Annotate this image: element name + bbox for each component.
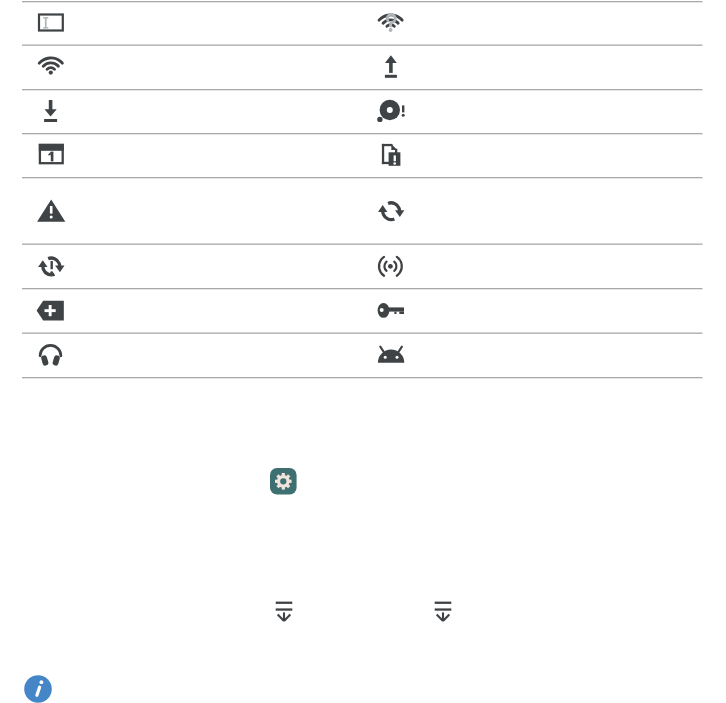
button[interactable] [275,601,293,623]
button[interactable] [270,468,297,495]
button[interactable] [434,601,452,623]
button[interactable] [24,675,52,703]
